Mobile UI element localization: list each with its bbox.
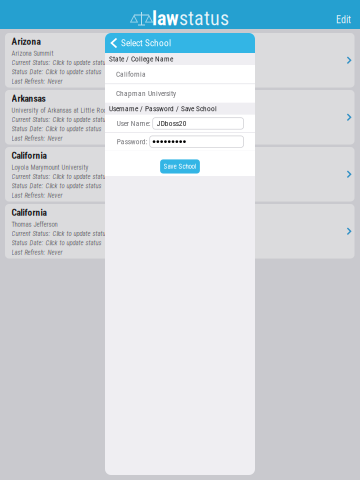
button[interactable]: Arkansas: [5, 90, 354, 144]
staticText: Status Date: Click to update status: [11, 239, 101, 247]
staticText: Last Refresh: Never: [11, 191, 62, 199]
button[interactable]: California: [5, 204, 354, 258]
button[interactable]: California: [105, 65, 255, 83]
staticText: Status Date: Click to update status: [11, 68, 101, 76]
staticText: law: [152, 7, 179, 30]
button[interactable]: Save School: [160, 159, 200, 173]
button[interactable]: California: [5, 147, 354, 201]
staticText: California: [116, 70, 146, 79]
staticText: California: [11, 207, 46, 218]
button[interactable]: Chapman University: [105, 84, 255, 103]
staticText: Chapman University: [116, 89, 176, 98]
staticText: Save School: [163, 162, 196, 170]
staticText: Thomas Jefferson: [11, 220, 57, 228]
staticText: Arkansas: [11, 93, 45, 104]
button[interactable]: Arizona: [5, 33, 354, 87]
staticText: Arizona Summit: [11, 49, 53, 57]
staticText: status: [179, 7, 229, 30]
staticText: Last Refresh: Never: [11, 77, 62, 85]
staticText: Username / Password / Save School: [109, 104, 217, 113]
button[interactable]: Select School: [105, 33, 255, 53]
staticText: User Name:: [117, 119, 151, 128]
staticText: Status Date: Click to update status: [11, 182, 101, 190]
staticText: Select School: [121, 37, 171, 48]
staticText: Current Status: Click to update status: [11, 230, 108, 238]
staticText: Last Refresh: Never: [11, 134, 62, 142]
staticText: Status Date: Click to update status: [11, 125, 101, 133]
staticText: Current Status: Click to update status: [11, 173, 108, 181]
staticText: Current Status: Click to update status: [11, 59, 108, 67]
staticText: Password:: [117, 137, 148, 146]
staticText: Current Status: Click to update status: [11, 116, 108, 124]
staticText: California: [11, 150, 46, 161]
staticText: Edit: [336, 14, 351, 26]
staticText: Arizona: [11, 36, 40, 47]
staticText: State / College Name: [109, 55, 173, 63]
staticText: JDboss20: [157, 119, 187, 128]
staticText: University of Arkansas at Little Rock: [11, 106, 109, 114]
button[interactable]: Edit: [326, 0, 360, 33]
staticText: Loyola Marymount University: [11, 163, 88, 171]
staticText: Last Refresh: Never: [11, 248, 62, 256]
